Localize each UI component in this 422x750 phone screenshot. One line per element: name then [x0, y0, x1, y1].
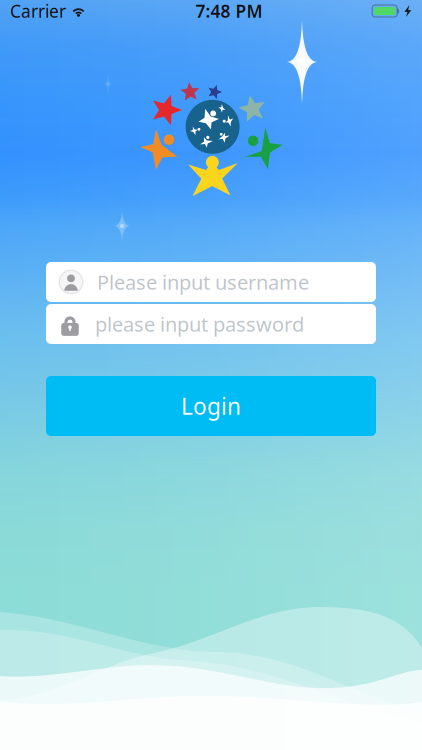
staticText: please input password [95, 311, 304, 337]
staticText: Login [181, 391, 241, 421]
button[interactable]: please input password [46, 304, 376, 344]
staticText: Carrier [10, 0, 66, 22]
button[interactable]: Please input username [46, 262, 376, 302]
button[interactable]: Login [46, 376, 376, 436]
staticText: Please input username [97, 269, 309, 295]
staticText: 7:48 PM [195, 0, 262, 22]
